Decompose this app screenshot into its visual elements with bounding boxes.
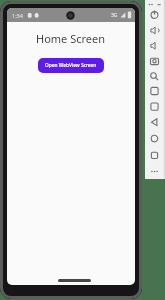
staticText: 1:34	[12, 12, 23, 19]
staticText: 3G	[111, 12, 118, 19]
staticText: Open WebView Screen	[45, 62, 97, 69]
staticText: Home Screen	[36, 31, 106, 46]
button[interactable]: Open WebView Screen	[38, 58, 104, 73]
